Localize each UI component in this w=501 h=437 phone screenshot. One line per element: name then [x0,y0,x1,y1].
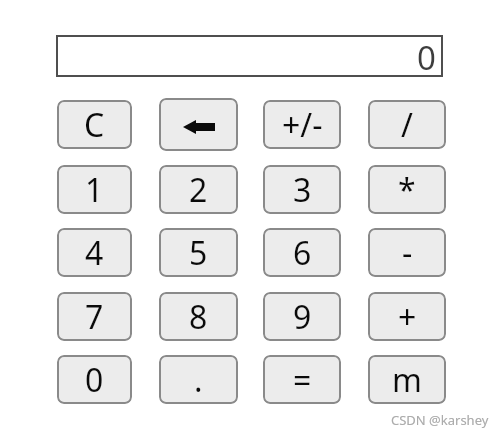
button[interactable]: 0 [56,35,443,77]
button[interactable]: m [368,355,446,404]
button[interactable]: C [57,100,132,149]
staticText: 0 [417,35,436,77]
staticText: / [401,103,413,147]
staticText: 6 [293,231,312,275]
button[interactable]: 9 [263,292,341,341]
button[interactable]: 3 [263,165,341,214]
button[interactable]: / [368,100,446,149]
staticText: . [194,358,203,402]
button[interactable]: +/- [263,100,341,149]
button[interactable]: . [159,355,238,404]
button[interactable] [159,98,238,151]
button[interactable]: * [368,165,446,214]
staticText: + [398,295,417,339]
button[interactable]: 7 [57,292,132,341]
staticText: CSDN @karshey [391,411,489,429]
staticText: 2 [189,168,208,212]
staticText: 4 [85,231,104,275]
staticText: 9 [293,295,312,339]
button[interactable]: 1 [57,165,132,214]
staticText: 0 [85,358,104,402]
button[interactable]: 0 [57,355,132,404]
staticText: C [84,103,105,147]
staticText: = [293,358,312,402]
staticText: * [398,168,416,212]
staticText: +/- [282,103,323,147]
button[interactable]: = [263,355,341,404]
staticText: 8 [189,295,208,339]
button[interactable]: 2 [159,165,238,214]
staticText: 3 [293,168,312,212]
staticText: 7 [85,295,104,339]
button[interactable]: 8 [159,292,238,341]
button[interactable]: + [368,292,446,341]
button[interactable]: 5 [159,228,238,277]
button[interactable]: 4 [57,228,132,277]
button[interactable]: 6 [263,228,341,277]
staticText: 1 [85,168,104,212]
staticText: 5 [189,231,208,275]
button[interactable]: - [368,228,446,277]
staticText: - [402,231,413,275]
staticText: m [392,358,422,402]
